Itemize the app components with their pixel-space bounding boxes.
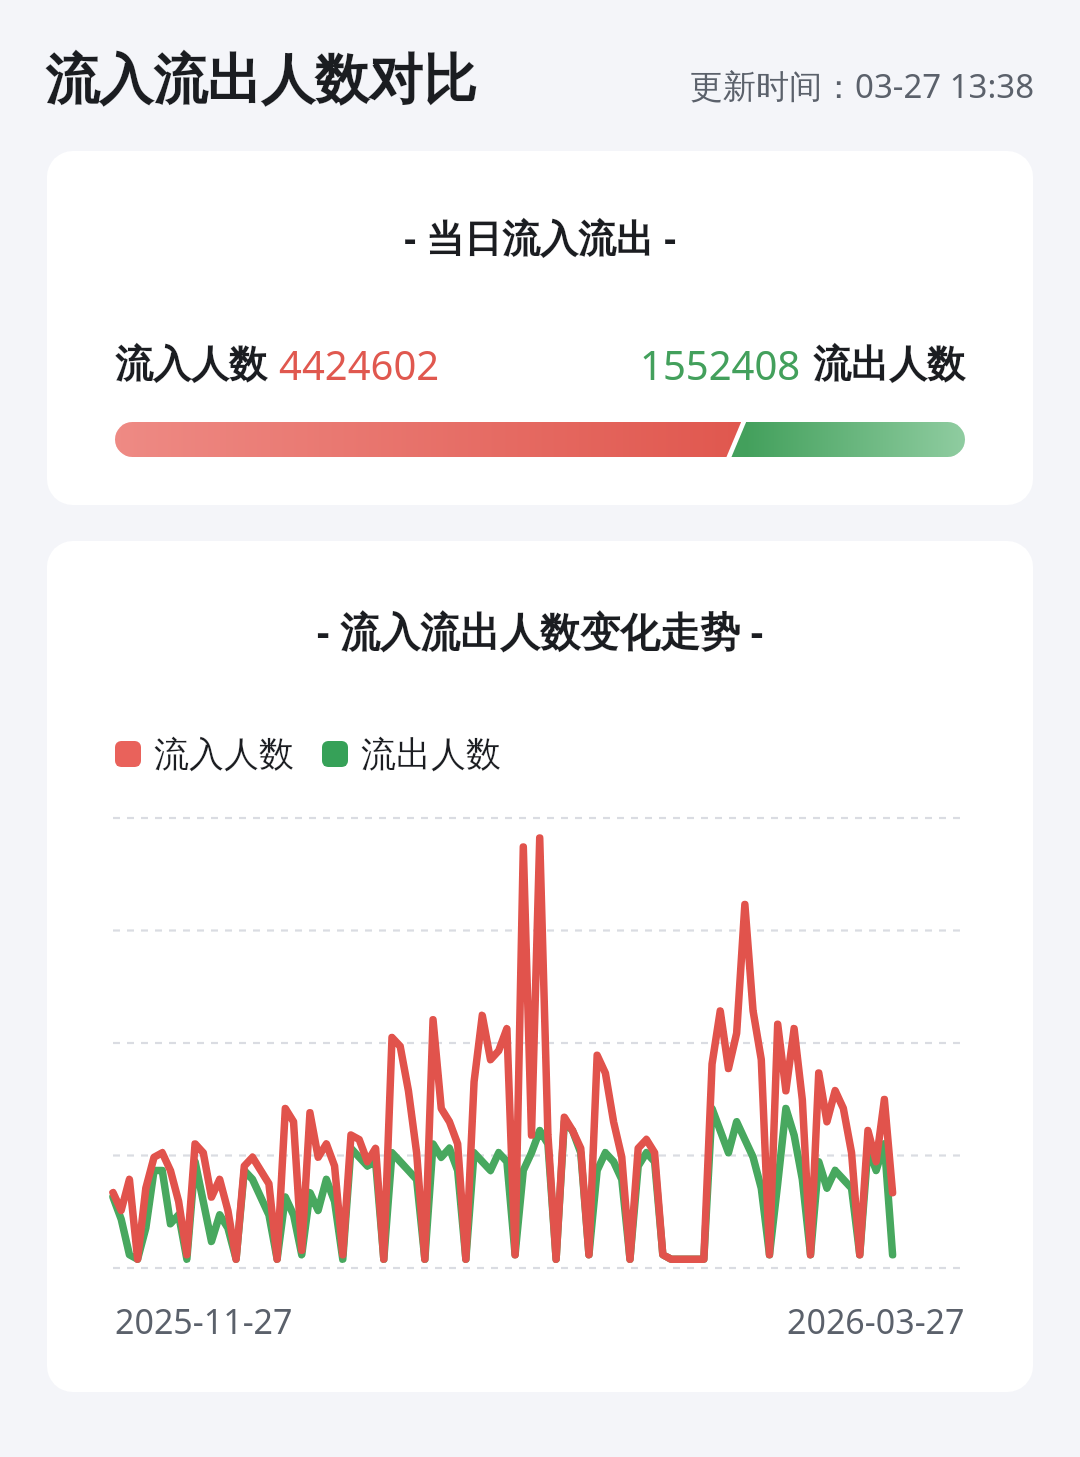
staticText: 更新时间：03-27 13:38: [690, 63, 1035, 108]
staticText: 流入人数: [115, 340, 267, 388]
staticText: 流出人数: [361, 732, 501, 776]
staticText: 4424602: [279, 337, 440, 391]
button[interactable]: - 当日流入流出 -: [47, 151, 1033, 505]
staticText: 流入人数: [154, 732, 294, 776]
staticText: 2026-03-27: [787, 1298, 965, 1344]
staticText: - 当日流入流出 -: [47, 211, 1033, 263]
staticText: 流出人数: [813, 340, 965, 388]
staticText: - 流入流出人数变化走势 -: [47, 603, 1033, 658]
staticText: 1552408: [640, 337, 801, 391]
button[interactable]: - 流入流出人数变化走势 -: [47, 541, 1033, 1392]
staticText: 2025-11-27: [115, 1298, 293, 1344]
staticText: 流入流出人数对比: [45, 46, 477, 114]
